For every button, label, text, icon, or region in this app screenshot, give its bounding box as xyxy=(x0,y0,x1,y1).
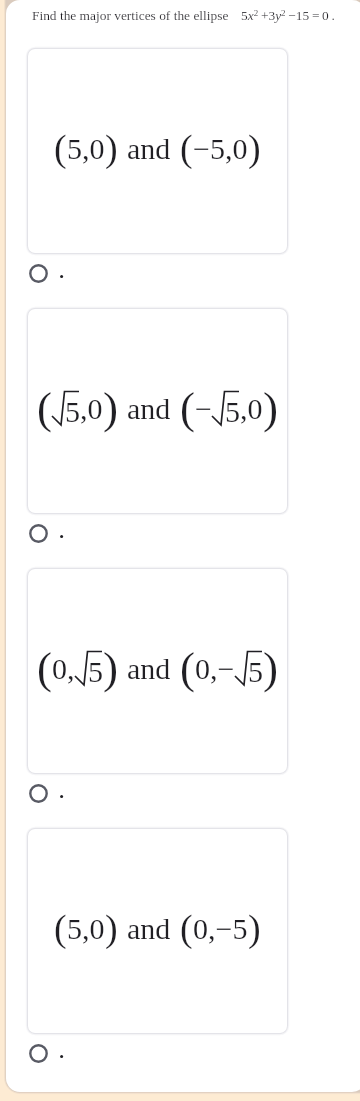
staticText: ) xyxy=(248,127,261,169)
staticText: ,0 xyxy=(80,392,103,425)
staticText: 5 xyxy=(65,395,80,428)
staticText: ( xyxy=(180,127,193,169)
staticText: ( xyxy=(54,127,67,169)
staticText: ) xyxy=(263,643,278,693)
staticText: ) xyxy=(248,907,261,949)
staticText: ( xyxy=(180,907,193,949)
staticText: 0,− xyxy=(195,652,235,685)
staticText: 5 xyxy=(248,655,263,688)
staticText: 0, xyxy=(52,652,75,685)
button[interactable]: ( xyxy=(28,309,287,513)
staticText: and xyxy=(127,132,171,165)
staticText: and xyxy=(127,652,171,685)
staticText: 5,0 xyxy=(67,132,105,165)
staticText: Find the major vertices of the ellipse 5… xyxy=(32,8,335,23)
button[interactable]: Select answer option xyxy=(29,524,360,569)
staticText: −5,0 xyxy=(193,132,248,165)
staticText: ) xyxy=(263,383,278,433)
button[interactable]: Select answer option xyxy=(29,1044,360,1089)
staticText: ( xyxy=(180,643,195,693)
staticText: ( xyxy=(37,383,52,433)
staticText: 5 xyxy=(225,395,240,428)
staticText: and xyxy=(127,392,171,425)
staticText: ( xyxy=(180,383,195,433)
staticText: ( xyxy=(54,907,67,949)
button[interactable]: Select answer option xyxy=(29,784,360,829)
other: Select answer option xyxy=(29,1044,48,1063)
staticText: ) xyxy=(105,127,118,169)
staticText: and xyxy=(127,912,171,945)
other: Select answer option xyxy=(29,264,48,283)
staticText: ) xyxy=(105,907,118,949)
button[interactable]: ( xyxy=(28,49,287,253)
staticText: ) xyxy=(103,643,118,693)
staticText: 5 xyxy=(88,655,103,688)
staticText: ) xyxy=(103,383,118,433)
other: Select answer option xyxy=(29,524,48,543)
button[interactable]: ( xyxy=(28,569,287,773)
other: Select answer option xyxy=(29,784,48,803)
staticText: 5,0 xyxy=(67,912,105,945)
staticText: − xyxy=(195,392,212,425)
staticText: ,0 xyxy=(240,392,263,425)
staticText: ( xyxy=(37,643,52,693)
staticText: 0,−5 xyxy=(193,912,248,945)
button[interactable]: ( xyxy=(28,829,287,1033)
button[interactable]: Select answer option xyxy=(29,264,360,309)
